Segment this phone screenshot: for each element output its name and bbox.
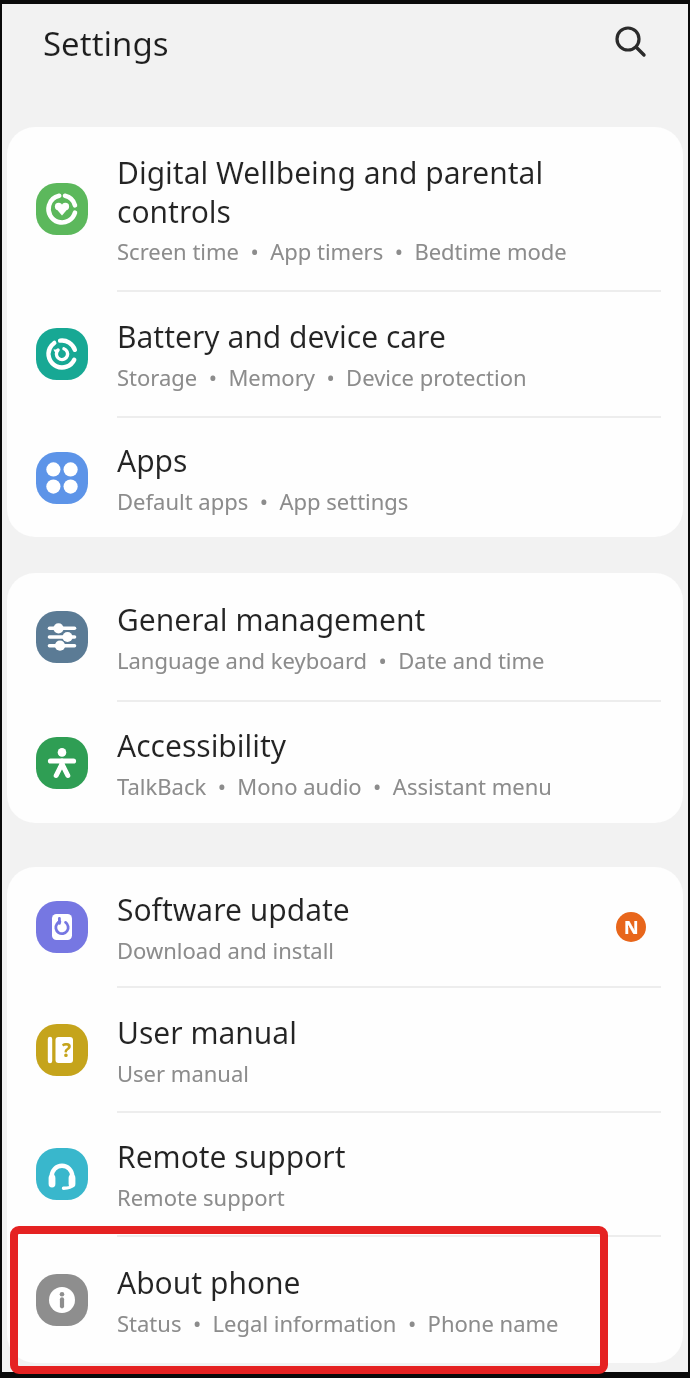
button[interactable]: Remote support	[7, 1113, 683, 1235]
staticText: Apps	[117, 440, 188, 481]
staticText: General management	[117, 599, 426, 640]
staticText: Screen time • App timers • Bedtime mode	[117, 236, 567, 266]
staticText: N	[624, 915, 639, 940]
staticText: Default apps • App settings	[117, 486, 409, 516]
button[interactable]: Accessibility	[7, 702, 683, 823]
staticText: About phone	[117, 1262, 301, 1303]
button[interactable]: Battery and device care	[7, 292, 683, 416]
button[interactable]	[607, 18, 655, 66]
staticText: Remote support	[117, 1136, 346, 1177]
button[interactable]: Software update	[7, 867, 683, 986]
staticText: Settings	[43, 21, 169, 66]
button[interactable]: ?	[7, 988, 683, 1111]
staticText: User manual	[117, 1012, 297, 1053]
staticText: Remote support	[117, 1182, 285, 1212]
button[interactable]: About phone	[7, 1237, 683, 1363]
staticText: User manual	[117, 1058, 249, 1088]
staticText: ?	[62, 1037, 72, 1063]
staticText: Battery and device care	[117, 316, 446, 357]
staticText: Digital Wellbeing and parental controls	[117, 152, 544, 231]
staticText: Status • Legal information • Phone name	[117, 1308, 559, 1338]
button[interactable]: Digital Wellbeing and parental controls	[7, 127, 683, 290]
button[interactable]: Apps	[7, 418, 683, 537]
staticText: Language and keyboard • Date and time	[117, 645, 545, 675]
button[interactable]: General management	[7, 573, 683, 700]
staticText: Accessibility	[117, 725, 287, 766]
staticText: TalkBack • Mono audio • Assistant menu	[117, 771, 552, 801]
staticText: Software update	[117, 889, 350, 930]
staticText: Download and install	[117, 935, 335, 965]
staticText: Storage • Memory • Device protection	[117, 362, 527, 392]
